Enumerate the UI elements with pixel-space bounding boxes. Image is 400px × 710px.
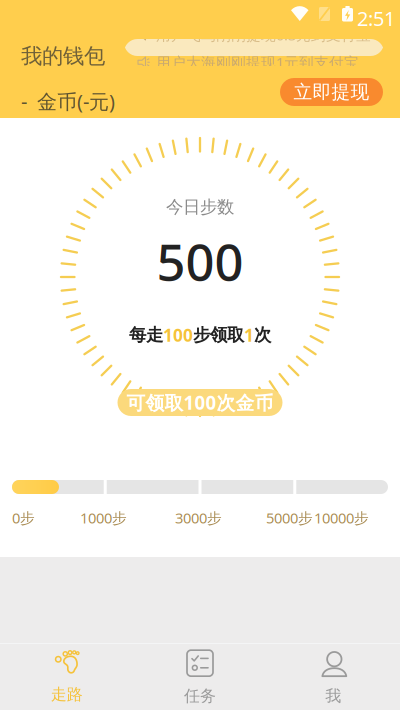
staticText: 0步 — [12, 508, 35, 527]
staticText: 走路 — [51, 685, 83, 704]
staticText: 次 — [254, 324, 271, 346]
staticText: 可领取100次金币 — [126, 390, 273, 415]
staticText: 1000步 — [80, 508, 127, 527]
staticText: 立即提现 — [293, 80, 369, 103]
staticText: 5000步 — [266, 508, 313, 527]
button[interactable]: 走路 — [0, 644, 133, 710]
staticText: 3000步 — [175, 508, 222, 527]
staticText: 500 — [156, 227, 243, 295]
staticText: 100 — [163, 323, 193, 346]
staticText: 我的钱包 — [21, 43, 105, 69]
staticText: 今日步数 — [166, 196, 234, 218]
staticText: 1 — [244, 323, 254, 346]
button[interactable]: 任务 — [133, 644, 267, 710]
staticText: 每走 — [129, 324, 163, 346]
staticText: 步领取 — [193, 324, 244, 346]
staticText: - 金币(-元) — [21, 88, 115, 115]
button[interactable]: 可领取100次金币 — [117, 389, 282, 416]
staticText: 2:51 — [357, 5, 395, 32]
staticText: 任务 — [184, 686, 216, 706]
staticText: 用户大海刚刚提现1元到支付宝 — [156, 52, 359, 72]
button[interactable]: 立即提现 — [280, 78, 383, 106]
button[interactable]: 我 — [267, 644, 400, 710]
staticText: 10000步 — [314, 508, 369, 527]
staticText: 我 — [325, 686, 341, 706]
staticText: 用户飞鸟刚刚提现0.3元到支付宝 — [156, 25, 371, 44]
